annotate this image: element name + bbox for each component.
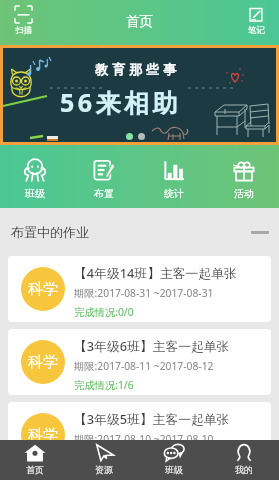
staticText: 【3年级5班】主客一起单张 bbox=[74, 410, 230, 427]
staticText: 统计 bbox=[164, 187, 184, 200]
button[interactable]: 教育那些事 bbox=[3, 48, 276, 142]
button[interactable]: 资源 bbox=[69, 440, 139, 480]
staticText: 首页 bbox=[126, 13, 153, 30]
button[interactable]: 班级 bbox=[139, 440, 209, 480]
staticText: 科学 bbox=[28, 426, 58, 445]
button[interactable]: 班级 bbox=[0, 145, 69, 208]
staticText: 期限:2017-08-10 ~2017-08-10 bbox=[74, 432, 214, 446]
staticText: 首页 bbox=[26, 464, 44, 475]
staticText: 【3年级6班】主客一起单张 bbox=[74, 337, 230, 354]
staticText: 【4年级14班】主客一起单张 bbox=[74, 264, 237, 281]
button[interactable]: 布置 bbox=[69, 145, 139, 208]
staticText: 教育那些事 bbox=[93, 61, 178, 77]
staticText: 完成情况:0/0 bbox=[74, 451, 134, 465]
button[interactable]: 笔记 bbox=[237, 6, 275, 36]
staticText: 56来相助 bbox=[60, 85, 182, 119]
staticText: 期限:2017-08-31 ~2017-08-31 bbox=[74, 286, 214, 300]
button[interactable]: 活动 bbox=[209, 145, 279, 208]
staticText: 班级 bbox=[25, 187, 45, 200]
staticText: 笔记 bbox=[248, 25, 265, 36]
staticText: 完成情况:1/6 bbox=[74, 378, 134, 392]
staticText: 期限:2017-08-11 ~2017-08-12 bbox=[74, 359, 214, 373]
button[interactable]: 科学 bbox=[8, 402, 271, 468]
button[interactable]: 科学 bbox=[8, 256, 271, 322]
staticText: 扫描 bbox=[15, 25, 32, 36]
staticText: 完成情况:0/0 bbox=[74, 305, 134, 319]
button[interactable]: 首页 bbox=[0, 440, 69, 480]
staticText: 班级 bbox=[165, 464, 183, 475]
staticText: 活动 bbox=[234, 187, 254, 200]
staticText: 我的 bbox=[235, 464, 253, 475]
staticText: 资源 bbox=[95, 464, 113, 475]
button[interactable]: 我的 bbox=[209, 440, 279, 480]
staticText: 科学 bbox=[28, 353, 58, 372]
staticText: 科学 bbox=[28, 280, 58, 299]
button[interactable]: 统计 bbox=[139, 145, 209, 208]
staticText: 布置 bbox=[94, 187, 114, 200]
button[interactable]: 扫描 bbox=[4, 6, 42, 36]
button[interactable]: 科学 bbox=[8, 329, 271, 395]
staticText: 布置中的作业 bbox=[11, 224, 89, 240]
